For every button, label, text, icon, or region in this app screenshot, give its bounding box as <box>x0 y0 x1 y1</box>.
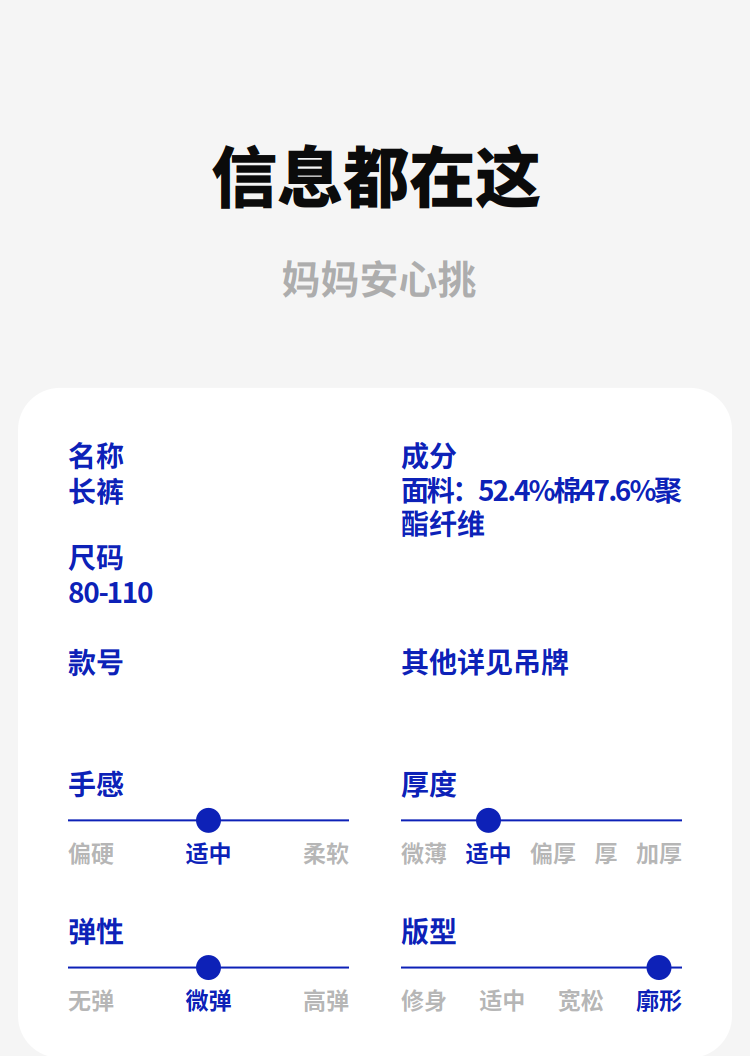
staticText: 偏硬 <box>68 838 114 866</box>
staticText: 修身 <box>401 954 447 981</box>
staticText: 适中 <box>465 807 511 834</box>
staticText: 其他详见吊牌 <box>401 644 569 678</box>
staticText: 微弹 <box>185 985 231 1013</box>
staticText: 面料：52.4%棉47.6%聚 <box>401 472 682 505</box>
staticText: 微弹 <box>185 954 231 981</box>
button[interactable]: 手感 <box>68 766 349 866</box>
staticText: 微薄 <box>401 807 447 834</box>
staticText: 酯纤维 <box>401 505 485 539</box>
staticText: 宽松 <box>558 954 604 981</box>
staticText: 无弹 <box>68 954 114 981</box>
staticText: 适中 <box>185 838 231 866</box>
staticText: 妈妈安心挑 <box>281 251 476 302</box>
staticText: 适中 <box>479 954 525 981</box>
button[interactable]: 厚度 <box>401 766 682 866</box>
staticText: 适中 <box>465 838 511 866</box>
staticText: 手感 <box>68 766 124 800</box>
staticText: 版型 <box>401 913 457 947</box>
staticText: 微薄 <box>401 838 447 866</box>
staticText: 柔软 <box>303 807 349 834</box>
staticText: 廓形 <box>636 954 682 981</box>
staticText: 信息都在这 <box>211 130 541 216</box>
staticText: 加厚 <box>636 838 682 866</box>
staticText: 修身 <box>401 985 447 1013</box>
staticText: 厚 <box>594 838 617 866</box>
staticText: 适中 <box>185 807 231 834</box>
staticText: 80-110 <box>68 574 154 607</box>
staticText: 尺码 <box>68 539 124 573</box>
staticText: 偏厚 <box>530 838 576 866</box>
staticText: 高弹 <box>303 985 349 1013</box>
button[interactable]: 版型 <box>401 913 682 1013</box>
staticText: 成分 <box>401 438 457 471</box>
staticText: 长裤 <box>68 473 124 507</box>
staticText: 无弹 <box>68 985 114 1013</box>
staticText: 偏厚 <box>530 807 576 834</box>
staticText: 名称 <box>68 438 124 471</box>
staticText: 高弹 <box>303 954 349 981</box>
staticText: 廓形 <box>636 985 682 1013</box>
staticText: 宽松 <box>558 985 604 1013</box>
staticText: 款号 <box>68 644 124 678</box>
staticText: 弹性 <box>68 913 124 947</box>
staticText: 加厚 <box>636 807 682 834</box>
staticText: 适中 <box>479 985 525 1013</box>
staticText: 厚 <box>594 807 617 834</box>
staticText: 偏硬 <box>68 807 114 834</box>
button[interactable]: 弹性 <box>68 913 349 1013</box>
staticText: 柔软 <box>303 838 349 866</box>
staticText: 厚度 <box>401 766 457 800</box>
